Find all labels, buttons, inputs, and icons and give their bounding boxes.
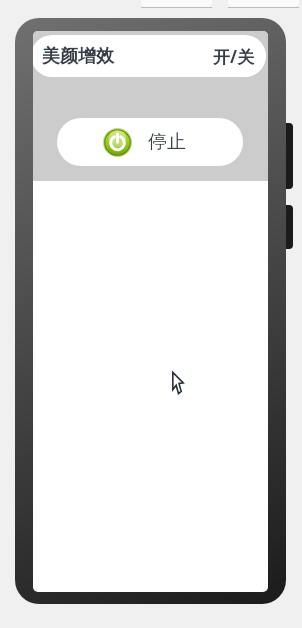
other: Power [103, 128, 132, 157]
staticText: 停止 [148, 130, 186, 154]
button[interactable]: 美颜增效 [33, 35, 266, 77]
staticText: 开/关 [213, 45, 255, 68]
button[interactable]: Power [57, 118, 243, 166]
staticText: 美颜增效 [42, 45, 114, 68]
